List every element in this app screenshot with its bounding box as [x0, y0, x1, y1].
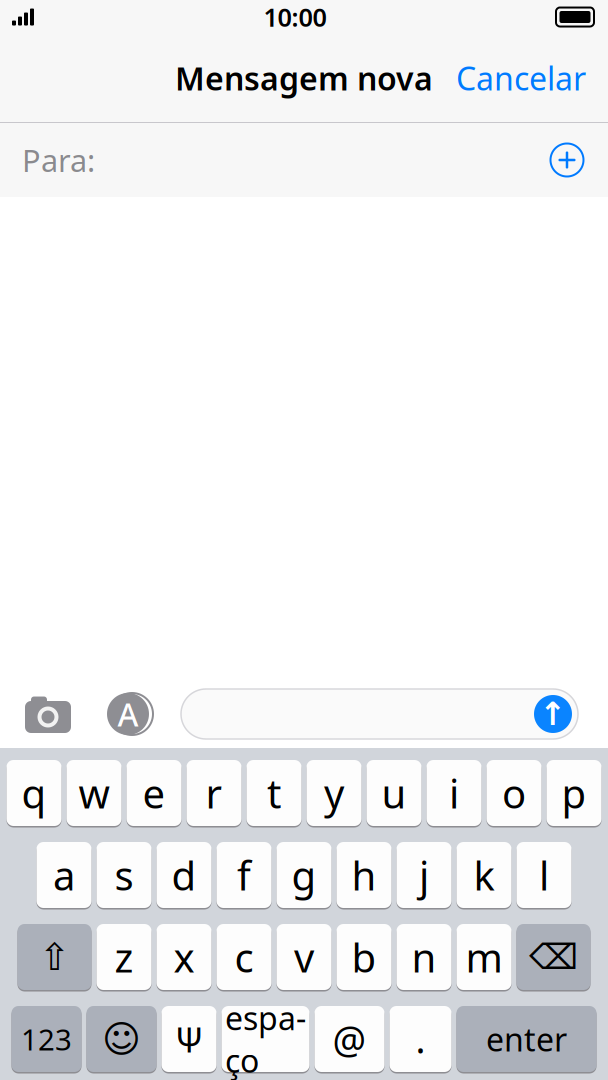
- staticText: x: [173, 930, 194, 983]
- staticText: 10:00: [263, 0, 326, 34]
- staticText: i: [449, 766, 459, 819]
- staticText: enter: [486, 1018, 567, 1060]
- staticText: y: [324, 766, 344, 819]
- staticText: a: [53, 848, 75, 901]
- button[interactable]: l: [516, 840, 571, 910]
- staticText: k: [473, 848, 494, 901]
- staticText: 123: [21, 1019, 72, 1058]
- button[interactable]: d: [156, 840, 211, 910]
- button[interactable]: m: [456, 922, 511, 992]
- button[interactable]: Apps: [102, 691, 154, 737]
- staticText: w: [78, 766, 109, 819]
- button[interactable]: ⌫: [516, 922, 590, 992]
- staticText: o: [502, 766, 526, 819]
- button[interactable]: a: [36, 840, 91, 910]
- button[interactable]: Cancelar: [442, 47, 600, 109]
- staticText: g: [291, 848, 316, 901]
- button[interactable]: 123: [11, 1004, 81, 1074]
- staticText: z: [114, 930, 133, 983]
- button[interactable]: Ψ: [161, 1004, 216, 1074]
- button[interactable]: s: [96, 840, 151, 910]
- staticText: d: [171, 848, 196, 901]
- button[interactable]: v: [276, 922, 331, 992]
- button[interactable]: t: [246, 758, 301, 828]
- staticText: Para:: [22, 140, 95, 180]
- button[interactable]: j: [396, 840, 451, 910]
- button[interactable]: p: [546, 758, 601, 828]
- staticText: m: [465, 930, 502, 983]
- button[interactable]: x: [156, 922, 211, 992]
- staticText: q: [21, 766, 46, 819]
- button[interactable]: Camera: [22, 691, 74, 737]
- staticText: h: [351, 848, 376, 901]
- button[interactable]: r: [186, 758, 241, 828]
- button[interactable]: enter: [456, 1004, 596, 1074]
- staticText: e: [142, 766, 165, 819]
- staticText: t: [267, 766, 281, 819]
- button[interactable]: h: [336, 840, 391, 910]
- staticText: f: [237, 848, 251, 901]
- staticText: A: [117, 693, 138, 735]
- button[interactable]: espaço: [221, 1004, 309, 1074]
- staticText: b: [351, 930, 376, 983]
- staticText: @: [332, 1014, 366, 1064]
- staticText: espaço: [225, 996, 306, 1080]
- staticText: ⌫: [529, 937, 578, 977]
- button[interactable]: k: [456, 840, 511, 910]
- button[interactable]: c: [216, 922, 271, 992]
- button[interactable]: w: [66, 758, 121, 828]
- button[interactable]: b: [336, 922, 391, 992]
- staticText: l: [539, 848, 549, 901]
- button[interactable]: n: [396, 922, 451, 992]
- staticText: s: [114, 848, 133, 901]
- button[interactable]: ☺: [86, 1004, 156, 1074]
- button[interactable]: Add contact: [540, 133, 594, 187]
- button[interactable]: i: [426, 758, 481, 828]
- button[interactable]: y: [306, 758, 361, 828]
- staticText: Cancelar: [456, 57, 586, 99]
- staticText: .: [415, 1014, 425, 1064]
- button[interactable]: z: [96, 922, 151, 992]
- button[interactable]: Send: [534, 695, 572, 733]
- staticText: r: [205, 766, 222, 819]
- staticText: p: [561, 766, 586, 819]
- button[interactable]: @: [314, 1004, 384, 1074]
- staticText: n: [411, 930, 436, 983]
- button[interactable]: g: [276, 840, 331, 910]
- staticText: ↑: [539, 696, 566, 732]
- staticText: j: [419, 848, 429, 901]
- staticText: Mensagem nova: [175, 57, 433, 99]
- button[interactable]: ⇧: [17, 922, 91, 992]
- staticText: ☺: [102, 1018, 141, 1060]
- staticText: c: [234, 930, 253, 983]
- staticText: u: [381, 766, 406, 819]
- button[interactable]: u: [366, 758, 421, 828]
- button[interactable]: q: [6, 758, 61, 828]
- staticText: v: [294, 930, 314, 983]
- button[interactable]: .: [389, 1004, 451, 1074]
- button[interactable]: f: [216, 840, 271, 910]
- staticText: Ψ: [175, 1016, 203, 1062]
- button[interactable]: e: [126, 758, 181, 828]
- button[interactable]: o: [486, 758, 541, 828]
- staticText: ⇧: [39, 936, 70, 978]
